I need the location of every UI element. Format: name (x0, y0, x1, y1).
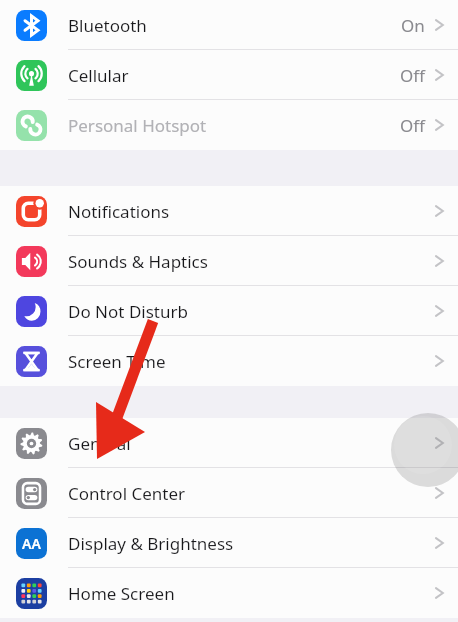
other: Pointer arrow at General (0, 0, 458, 622)
staticText: Home Screen (68, 582, 175, 605)
staticText: On (401, 14, 425, 37)
staticText: Personal Hotspot (68, 114, 207, 137)
button[interactable]: Control Center (0, 468, 458, 518)
staticText: Bluetooth (68, 14, 147, 37)
button[interactable]: General (0, 418, 458, 468)
button[interactable]: Home Screen (0, 568, 458, 618)
button[interactable]: Personal Hotspot (0, 100, 458, 150)
button[interactable]: Cellular (0, 50, 458, 100)
staticText: Cellular (68, 64, 129, 87)
staticText: Off (400, 114, 425, 137)
staticText: AA (22, 534, 41, 553)
staticText: Sounds & Haptics (68, 250, 208, 273)
button[interactable]: AA (0, 518, 458, 568)
staticText: Do Not Disturb (68, 300, 188, 323)
staticText: Screen Time (68, 350, 166, 373)
button[interactable]: Bluetooth (0, 0, 458, 50)
button[interactable]: Sounds & Haptics (0, 236, 458, 286)
button[interactable]: Do Not Disturb (0, 286, 458, 336)
staticText: Control Center (68, 482, 186, 505)
staticText: General (68, 432, 131, 455)
button[interactable]: Screen Time (0, 336, 458, 386)
staticText: Off (400, 64, 425, 87)
staticText: Notifications (68, 200, 170, 223)
button[interactable]: Notifications (0, 186, 458, 236)
staticText: Display & Brightness (68, 532, 234, 555)
